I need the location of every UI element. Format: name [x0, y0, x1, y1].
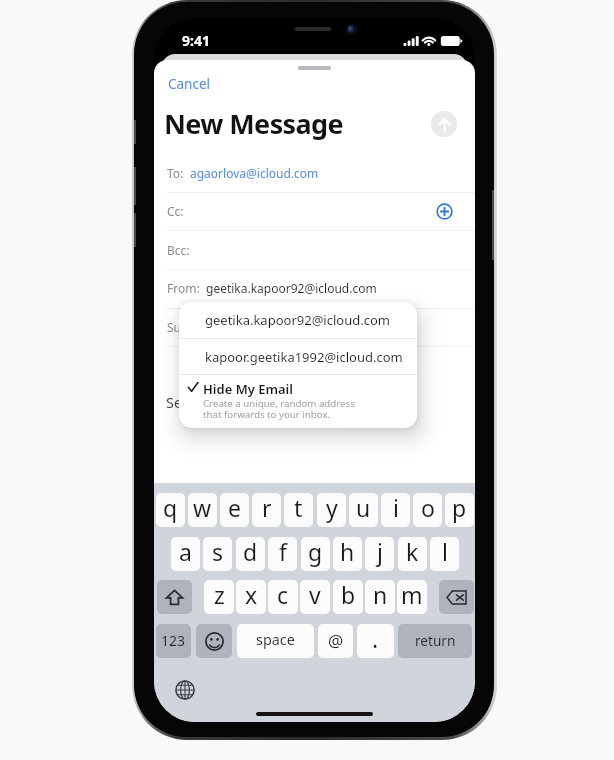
staticText: p — [452, 493, 467, 523]
staticText: Subject: — [167, 319, 212, 335]
staticText: l — [442, 537, 448, 567]
button[interactable]: g — [301, 537, 330, 571]
staticText: x — [245, 580, 258, 610]
staticText: w — [193, 493, 212, 523]
button[interactable]: From: — [154, 269, 475, 307]
button[interactable]: f — [268, 537, 297, 571]
staticText: z — [214, 580, 225, 610]
button[interactable]: return — [398, 624, 472, 658]
staticText: m — [401, 580, 423, 610]
staticText: Cancel — [168, 75, 211, 93]
button[interactable]: 123 — [156, 624, 191, 658]
button[interactable]: w — [188, 493, 217, 527]
button[interactable]: l — [430, 537, 459, 571]
staticText: b — [341, 580, 356, 610]
button[interactable]: i — [381, 493, 410, 527]
staticText: i — [393, 493, 399, 523]
button[interactable]: m — [397, 580, 427, 614]
button[interactable]: Subject: — [154, 308, 475, 346]
staticText: o — [421, 493, 435, 523]
button[interactable]: o — [413, 493, 442, 527]
staticText: agaorlova@icloud.com — [190, 165, 319, 181]
button[interactable]: . — [357, 624, 394, 658]
staticText: kapoor.geetika1992@icloud.com — [205, 348, 403, 366]
button[interactable]: q — [156, 493, 185, 527]
button[interactable]: Backspace — [439, 580, 474, 614]
button[interactable]: b — [333, 580, 363, 614]
button[interactable]: Cancel — [163, 72, 216, 96]
staticText: q — [163, 493, 178, 523]
button[interactable]: Send — [431, 111, 457, 137]
button[interactable]: d — [236, 537, 265, 571]
staticText: Sent from my iPhone — [166, 392, 309, 412]
staticText: geetika.kapoor92@icloud.com — [206, 280, 377, 296]
staticText: To: — [167, 165, 184, 181]
staticText: d — [243, 537, 258, 567]
button[interactable]: geetika.kapoor92@icloud.com — [179, 302, 417, 338]
staticText: s — [212, 537, 224, 567]
staticText: v — [309, 580, 321, 610]
staticText: Cc: — [167, 203, 184, 219]
staticText: From: — [167, 280, 200, 296]
button[interactable]: Change keyboard — [172, 677, 197, 702]
staticText: return — [415, 631, 456, 650]
staticText: c — [277, 580, 289, 610]
staticText: u — [356, 493, 371, 523]
button[interactable]: z — [204, 580, 234, 614]
button[interactable]: k — [398, 537, 427, 571]
staticText: h — [340, 537, 355, 567]
button[interactable]: x — [236, 580, 266, 614]
staticText: t — [294, 493, 303, 523]
button[interactable]: Cc: — [154, 192, 475, 230]
button[interactable]: a — [171, 537, 200, 571]
staticText: g — [308, 537, 323, 567]
staticText: 9:41 — [182, 31, 210, 50]
button[interactable]: s — [203, 537, 232, 571]
staticText: j — [377, 537, 383, 567]
staticText: a — [179, 537, 192, 567]
button[interactable]: Hide My Email — [179, 375, 417, 428]
button[interactable]: space — [237, 624, 314, 658]
button[interactable]: h — [333, 537, 362, 571]
button[interactable]: e — [220, 493, 249, 527]
staticText: y — [326, 493, 338, 523]
staticText: k — [406, 537, 419, 567]
staticText: space — [256, 630, 295, 650]
staticText: f — [279, 537, 287, 567]
button[interactable]: v — [300, 580, 330, 614]
button[interactable]: r — [252, 493, 281, 527]
staticText: Bcc: — [167, 242, 190, 258]
staticText: Hide My Email — [203, 380, 293, 398]
staticText: Create a unique, random address that for… — [203, 397, 355, 421]
staticText: @ — [328, 629, 344, 652]
staticText: . — [372, 624, 379, 654]
button[interactable]: To: — [154, 154, 475, 192]
button[interactable]: @ — [318, 624, 353, 658]
staticText: New Message — [164, 105, 344, 142]
staticText: r — [262, 493, 272, 523]
button[interactable]: y — [317, 493, 346, 527]
staticText: e — [228, 493, 241, 523]
button[interactable]: kapoor.geetika1992@icloud.com — [179, 339, 417, 374]
staticText: geetika.kapoor92@icloud.com — [205, 311, 390, 329]
button[interactable]: p — [445, 493, 474, 527]
button[interactable]: t — [284, 493, 313, 527]
button[interactable]: u — [349, 493, 378, 527]
button[interactable]: Bcc: — [154, 231, 475, 269]
staticText: n — [373, 580, 388, 610]
button[interactable]: c — [268, 580, 298, 614]
staticText: 123 — [161, 631, 186, 650]
button[interactable]: Shift — [157, 580, 192, 614]
button[interactable]: n — [365, 580, 395, 614]
button[interactable]: j — [365, 537, 394, 571]
button[interactable]: Emoji — [196, 624, 232, 658]
